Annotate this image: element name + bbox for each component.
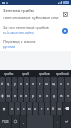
button[interactable]: в [12,89,17,102]
button[interactable]: щ [51,77,57,89]
button[interactable]: з [58,77,64,89]
staticText: ru.b-качество.сайты [3,31,34,35]
staticText: и [34,106,37,111]
staticText: гриб [22,72,30,76]
button[interactable]: , [20,115,26,128]
staticText: я [11,106,13,111]
staticText: ь [47,106,49,111]
button[interactable]: . [54,115,60,128]
button[interactable]: ш [44,77,50,89]
staticText: т [41,106,43,111]
button[interactable]: о [37,89,43,102]
staticText: е [26,81,28,86]
staticText: н [32,81,35,86]
staticText: ш [45,81,49,86]
staticText: б [52,106,55,111]
button[interactable]: м [27,102,32,115]
staticText: п [25,93,28,98]
button[interactable]: грибной [53,70,71,77]
button[interactable]: а [18,89,23,102]
button[interactable]: гриб [17,70,35,77]
button[interactable]: й [0,77,5,89]
button[interactable]: грибы [0,70,17,77]
staticText: ?123 [2,120,9,124]
staticText: з [60,81,62,86]
staticText: у [14,81,16,86]
button[interactable]: б [51,102,56,115]
staticText: р [32,93,35,98]
button[interactable]: с [21,102,26,115]
staticText: ч [17,106,19,111]
staticText: , [23,120,24,124]
staticText: галечниковые хубковые или [3,15,59,20]
staticText: . [57,120,58,124]
button[interactable]: Удалить [63,102,71,115]
button[interactable]: Информация [61,27,68,34]
button[interactable]: к [18,77,23,89]
button[interactable]: Эмодзи [12,115,19,128]
button[interactable]: д [51,89,57,102]
button[interactable]: т [39,102,44,115]
staticText: а [20,93,22,98]
button[interactable]: л [44,89,50,102]
staticText: м [28,106,31,111]
staticText: о [39,93,42,98]
staticText: с [23,106,25,111]
staticText: русский [3,45,16,49]
staticText: в [14,93,16,98]
button[interactable]: п [24,89,29,102]
staticText: грибной [56,72,69,76]
button[interactable]: Shift [0,102,8,115]
button[interactable]: н [30,77,36,89]
button[interactable]: р [30,89,36,102]
button[interactable]: ю [57,102,62,115]
staticText: Зеленая грибы [3,8,35,14]
button[interactable]: ц [6,77,11,89]
staticText: э [67,93,69,98]
staticText: За что зеленный грибов [3,25,49,30]
button[interactable]: у [12,77,17,89]
staticText: ф [1,93,4,98]
staticText: ю [58,106,61,111]
staticText: грибов [39,72,50,76]
button[interactable]: ь [45,102,50,115]
button[interactable]: ч [15,102,20,115]
staticText: Перевод с языка [3,39,36,44]
staticText: грибы [4,72,14,76]
button[interactable]: Перевод с языка [0,37,71,51]
staticText: г [39,81,41,86]
button[interactable]: Ввод [61,115,71,128]
button[interactable]: ы [6,89,11,102]
button[interactable]: Очистить [62,11,68,17]
staticText: ц [7,81,10,86]
staticText: ж [60,93,63,98]
button[interactable]: За что зеленный грибов [0,23,71,37]
button[interactable]: грибов [35,70,53,77]
button[interactable]: ?123 [0,115,11,128]
staticText: щ [52,81,56,86]
button[interactable]: я [9,102,14,115]
staticText: й [1,81,4,86]
button[interactable]: х [65,77,71,89]
button[interactable]: ж [58,89,64,102]
staticText: ы [7,93,10,98]
button[interactable]: г [37,77,43,89]
staticText: х [67,81,69,86]
button[interactable]: э [65,89,71,102]
staticText: к [20,81,22,86]
button[interactable]: ф [0,89,5,102]
staticText: л [46,93,48,98]
button[interactable]: е [24,77,29,89]
button[interactable]: Зеленая грибы [0,5,71,23]
staticText: д [53,93,56,98]
button[interactable]: и [33,102,38,115]
